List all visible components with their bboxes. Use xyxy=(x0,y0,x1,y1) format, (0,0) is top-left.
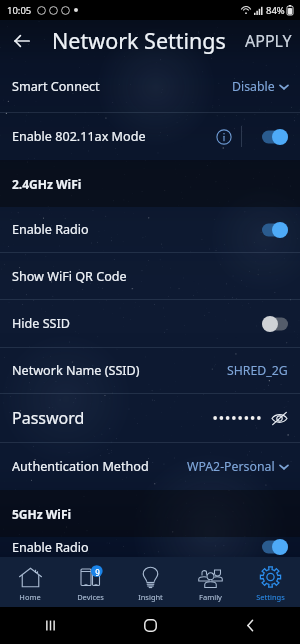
staticText: 10:05 xyxy=(7,4,32,17)
button[interactable]: Settings xyxy=(240,557,300,607)
button[interactable]: Home xyxy=(0,557,60,607)
staticText: Network Settings xyxy=(52,26,226,55)
staticText: Enable 802.11ax Mode xyxy=(12,128,146,145)
staticText: 9 xyxy=(95,567,100,578)
button[interactable]: Back xyxy=(0,20,44,61)
staticText: WPA2-Personal xyxy=(187,458,275,475)
button[interactable]: Toggle on xyxy=(262,222,288,238)
button[interactable]: Home xyxy=(100,607,200,644)
staticText: Password xyxy=(12,407,85,429)
button[interactable]: Enable Radio xyxy=(0,537,300,557)
staticText: Insight xyxy=(138,592,163,602)
staticText: Settings xyxy=(256,592,285,602)
button[interactable]: Show password xyxy=(271,410,288,427)
staticText: Enable Radio xyxy=(12,539,89,556)
button[interactable]: Back xyxy=(200,607,300,644)
button[interactable]: Enable 802.11ax Mode xyxy=(0,113,300,160)
staticText: Authentication Method xyxy=(12,458,149,475)
staticText: 84% xyxy=(266,4,285,17)
staticText: Hide SSID xyxy=(12,315,70,332)
staticText: Family xyxy=(199,592,222,602)
button[interactable]: Password xyxy=(0,394,300,442)
staticText: Smart Connect xyxy=(12,78,100,95)
staticText: Show WiFi QR Code xyxy=(12,268,127,285)
button[interactable]: APPLY xyxy=(237,20,300,61)
button[interactable]: Show WiFi QR Code xyxy=(0,253,300,299)
button[interactable]: Toggle on xyxy=(262,539,288,555)
staticText: Devices xyxy=(77,592,104,602)
staticText: 2.4GHz WiFi xyxy=(12,176,82,192)
staticText: APPLY xyxy=(245,30,292,52)
button[interactable]: Recents xyxy=(0,607,100,644)
staticText: SHRED_2G xyxy=(227,362,288,379)
staticText: 5GHz WiFi xyxy=(12,506,72,522)
button[interactable]: More info xyxy=(216,129,232,145)
staticText: Disable xyxy=(232,78,275,95)
button[interactable]: Family xyxy=(180,557,240,607)
button[interactable]: Toggle off xyxy=(262,316,288,332)
staticText: Network Name (SSID) xyxy=(12,362,140,379)
button[interactable]: 9 xyxy=(60,557,120,607)
button[interactable]: Enable Radio xyxy=(0,207,300,252)
button[interactable]: Authentication Method xyxy=(0,443,300,490)
button[interactable]: Insight xyxy=(120,557,180,607)
button[interactable]: Toggle on xyxy=(262,129,288,145)
button[interactable]: Network Name (SSID) xyxy=(0,348,300,393)
staticText: Enable Radio xyxy=(12,221,89,238)
staticText: Home xyxy=(19,592,41,602)
button[interactable]: Hide SSID xyxy=(0,300,300,347)
button[interactable]: Smart Connect xyxy=(0,61,300,112)
